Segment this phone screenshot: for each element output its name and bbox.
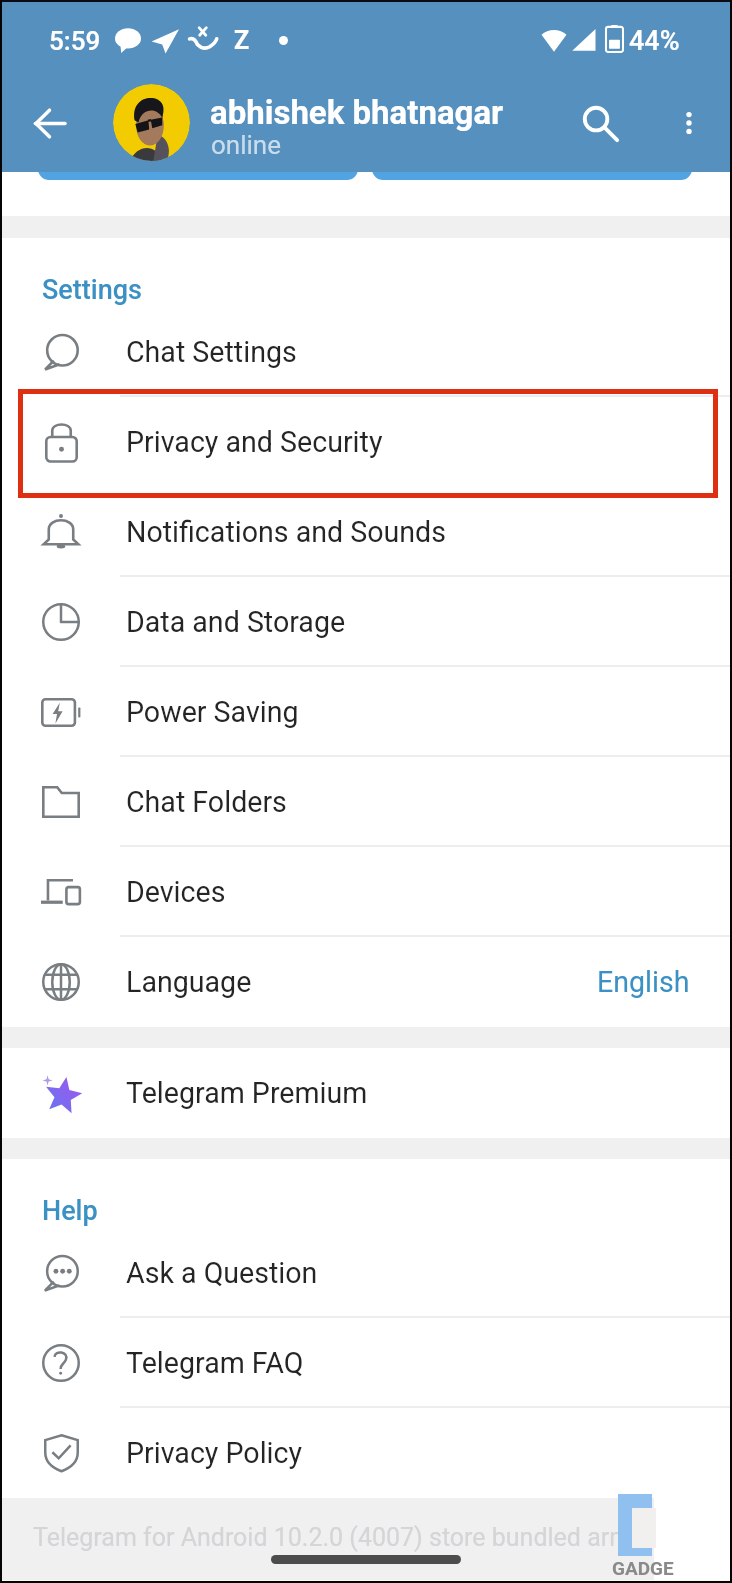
staticText: Help (42, 1195, 98, 1227)
button[interactable]: Search (563, 86, 637, 160)
button[interactable]: Data and Storage (0, 577, 732, 667)
button[interactable]: Power Saving (0, 667, 732, 757)
staticText: Power Saving (126, 695, 299, 729)
staticText: GADGE (612, 1557, 674, 1579)
staticText: Privacy Policy (126, 1436, 303, 1470)
staticText: Devices (126, 875, 226, 909)
staticText: Notifications and Sounds (126, 515, 446, 549)
staticText: Telegram FAQ (126, 1346, 304, 1380)
staticText: Settings (42, 274, 142, 306)
button[interactable]: More options (652, 86, 726, 160)
button[interactable]: Privacy Policy (0, 1408, 732, 1498)
staticText: Chat Settings (126, 335, 297, 369)
button[interactable]: Voice chat (372, 140, 692, 180)
staticText: Data and Storage (126, 605, 346, 639)
button[interactable]: Back (13, 87, 85, 159)
staticText: abhishek bhatnagar (210, 93, 504, 132)
staticText: Telegram Premium (126, 1076, 368, 1110)
staticText: Ask a Question (126, 1256, 318, 1290)
button[interactable]: Chat Folders (0, 757, 732, 847)
staticText: online (211, 130, 281, 160)
staticText: Telegram for Android 10.2.0 (4007) store… (33, 1523, 660, 1552)
staticText: Language (126, 965, 252, 999)
button[interactable]: Notifications and Sounds (0, 487, 732, 577)
button[interactable]: Devices (0, 847, 732, 937)
staticText: Z (234, 26, 250, 55)
button[interactable]: Chat Settings (0, 307, 732, 397)
button[interactable]: Action (38, 140, 358, 180)
button[interactable]: Ask a Question (0, 1228, 732, 1318)
staticText: Chat Folders (126, 785, 287, 819)
staticText: Privacy and Security (126, 425, 383, 459)
button[interactable]: Telegram FAQ (0, 1318, 732, 1408)
button[interactable]: Language (0, 937, 732, 1027)
staticText: English (597, 965, 690, 999)
button[interactable]: Telegram Premium (0, 1048, 732, 1138)
staticText: 5:59 (49, 26, 101, 56)
button[interactable]: Privacy and Security (0, 397, 732, 487)
staticText: 44% (629, 25, 680, 57)
